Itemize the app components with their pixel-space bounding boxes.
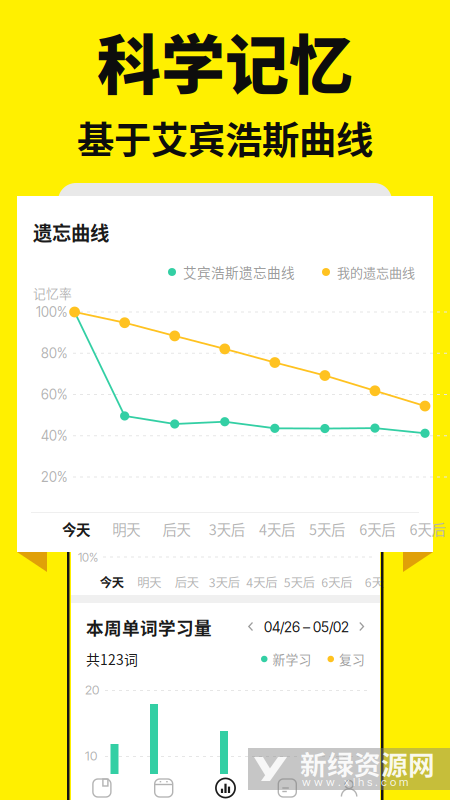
staticText: 记忆率 (33, 284, 72, 302)
button[interactable]: 后天 (151, 516, 202, 542)
button[interactable]: 5天后 (302, 516, 352, 542)
staticText: 04/26 – 05/02 (264, 618, 349, 635)
button[interactable]: 3天后 (202, 516, 252, 542)
button[interactable]: 明天 (101, 516, 151, 542)
staticText: 新学习 (272, 650, 311, 668)
button[interactable]: Me (318, 776, 380, 800)
staticText: 6天 (365, 573, 384, 591)
staticText: 科学记忆 (97, 14, 353, 107)
staticText: 5天后 (309, 519, 345, 539)
staticText: 3天后 (209, 519, 245, 539)
staticText: 复习 (339, 650, 365, 668)
staticText: 6天后 (409, 519, 445, 539)
staticText: 6天后 (359, 519, 395, 539)
staticText: 明天 (137, 573, 161, 591)
staticText: 6天后 (321, 573, 352, 591)
staticText: 3天后 (209, 573, 240, 591)
staticText: 今天 (62, 519, 90, 539)
staticText: 新绿资源网 (300, 744, 435, 782)
button[interactable]: 4天后 (252, 516, 302, 542)
staticText: 20% (41, 469, 67, 485)
button[interactable]: 6天后 (352, 516, 402, 542)
staticText: w w w . x l h s . c o m (302, 775, 408, 789)
staticText: 10% (78, 550, 98, 565)
button[interactable]: Save (71, 776, 133, 800)
button[interactable]: 6天后 (402, 516, 450, 542)
button[interactable]: 今天 (51, 516, 101, 542)
staticText: 100% (36, 304, 67, 320)
staticText: 本周单词学习量 (86, 614, 212, 640)
staticText: 80% (41, 345, 67, 362)
staticText: 5天后 (284, 573, 315, 591)
button[interactable]: Notebook (256, 776, 318, 800)
staticText: 60% (41, 386, 67, 403)
staticText: 后天 (175, 573, 199, 591)
staticText: 4天后 (246, 573, 277, 591)
staticText: 10 (85, 748, 97, 764)
button[interactable]: Plan (133, 776, 195, 800)
staticText: 明天 (112, 519, 140, 539)
staticText: 40% (41, 428, 67, 444)
staticText: 遗忘曲线 (33, 218, 109, 246)
staticText: 我的遗忘曲线 (337, 262, 415, 281)
staticText: 4天后 (259, 519, 295, 539)
staticText: 后天 (162, 519, 190, 539)
staticText: 今天 (100, 573, 124, 591)
staticText: 基于艾宾浩斯曲线 (77, 111, 373, 165)
staticText: 20 (85, 682, 99, 698)
button[interactable]: Statistics (195, 776, 256, 800)
staticText: 共123词 (86, 649, 138, 669)
staticText: 艾宾浩斯遗忘曲线 (183, 262, 295, 282)
